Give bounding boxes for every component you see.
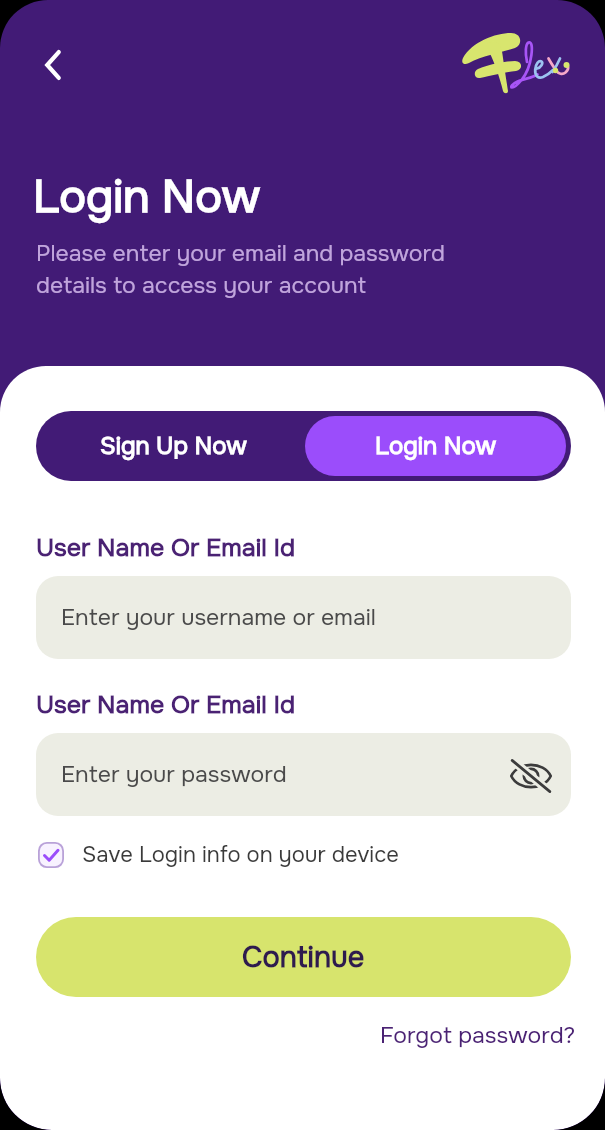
staticText: Forgot password?	[380, 1021, 576, 1050]
staticText: Enter your username or email	[61, 603, 376, 632]
button[interactable]: Save Login info on your device	[38, 841, 399, 869]
staticText: User Name Or Email Id	[36, 532, 296, 564]
staticText: User Name Or Email Id	[36, 689, 296, 721]
staticText: Save Login info on your device	[82, 841, 399, 869]
staticText: Continue	[242, 939, 365, 976]
staticText: Login Now	[375, 431, 497, 462]
button[interactable]: Forgot password?	[380, 1021, 576, 1050]
button[interactable]: Show password	[509, 754, 553, 798]
button[interactable]: Enter your username or email	[36, 576, 571, 659]
button[interactable]: Continue	[36, 917, 571, 997]
button[interactable]: Back	[32, 43, 76, 87]
staticText: Login Now	[33, 168, 260, 225]
staticText: Enter your password	[61, 760, 287, 789]
button[interactable]: Enter your password	[36, 733, 571, 816]
button[interactable]: Sign Up Now	[41, 416, 305, 476]
staticText: Please enter your email and password det…	[36, 239, 445, 300]
button[interactable]: Login Now	[305, 416, 566, 476]
staticText: Sign Up Now	[100, 431, 247, 462]
